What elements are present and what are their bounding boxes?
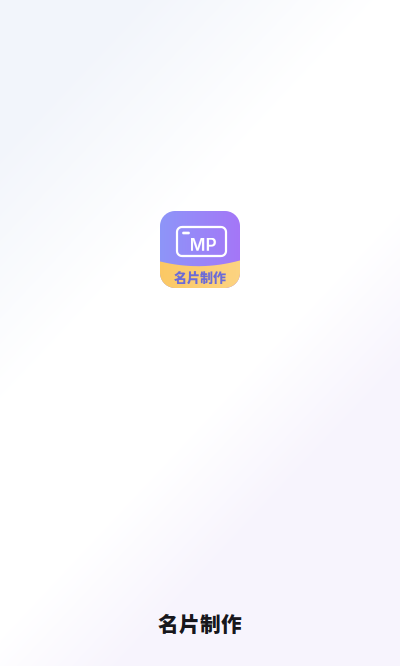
- staticText: 名片制作: [158, 608, 242, 638]
- staticText: MP: [189, 234, 216, 255]
- button[interactable]: 名片制作: [160, 211, 240, 288]
- staticText: 名片制作: [174, 267, 226, 286]
